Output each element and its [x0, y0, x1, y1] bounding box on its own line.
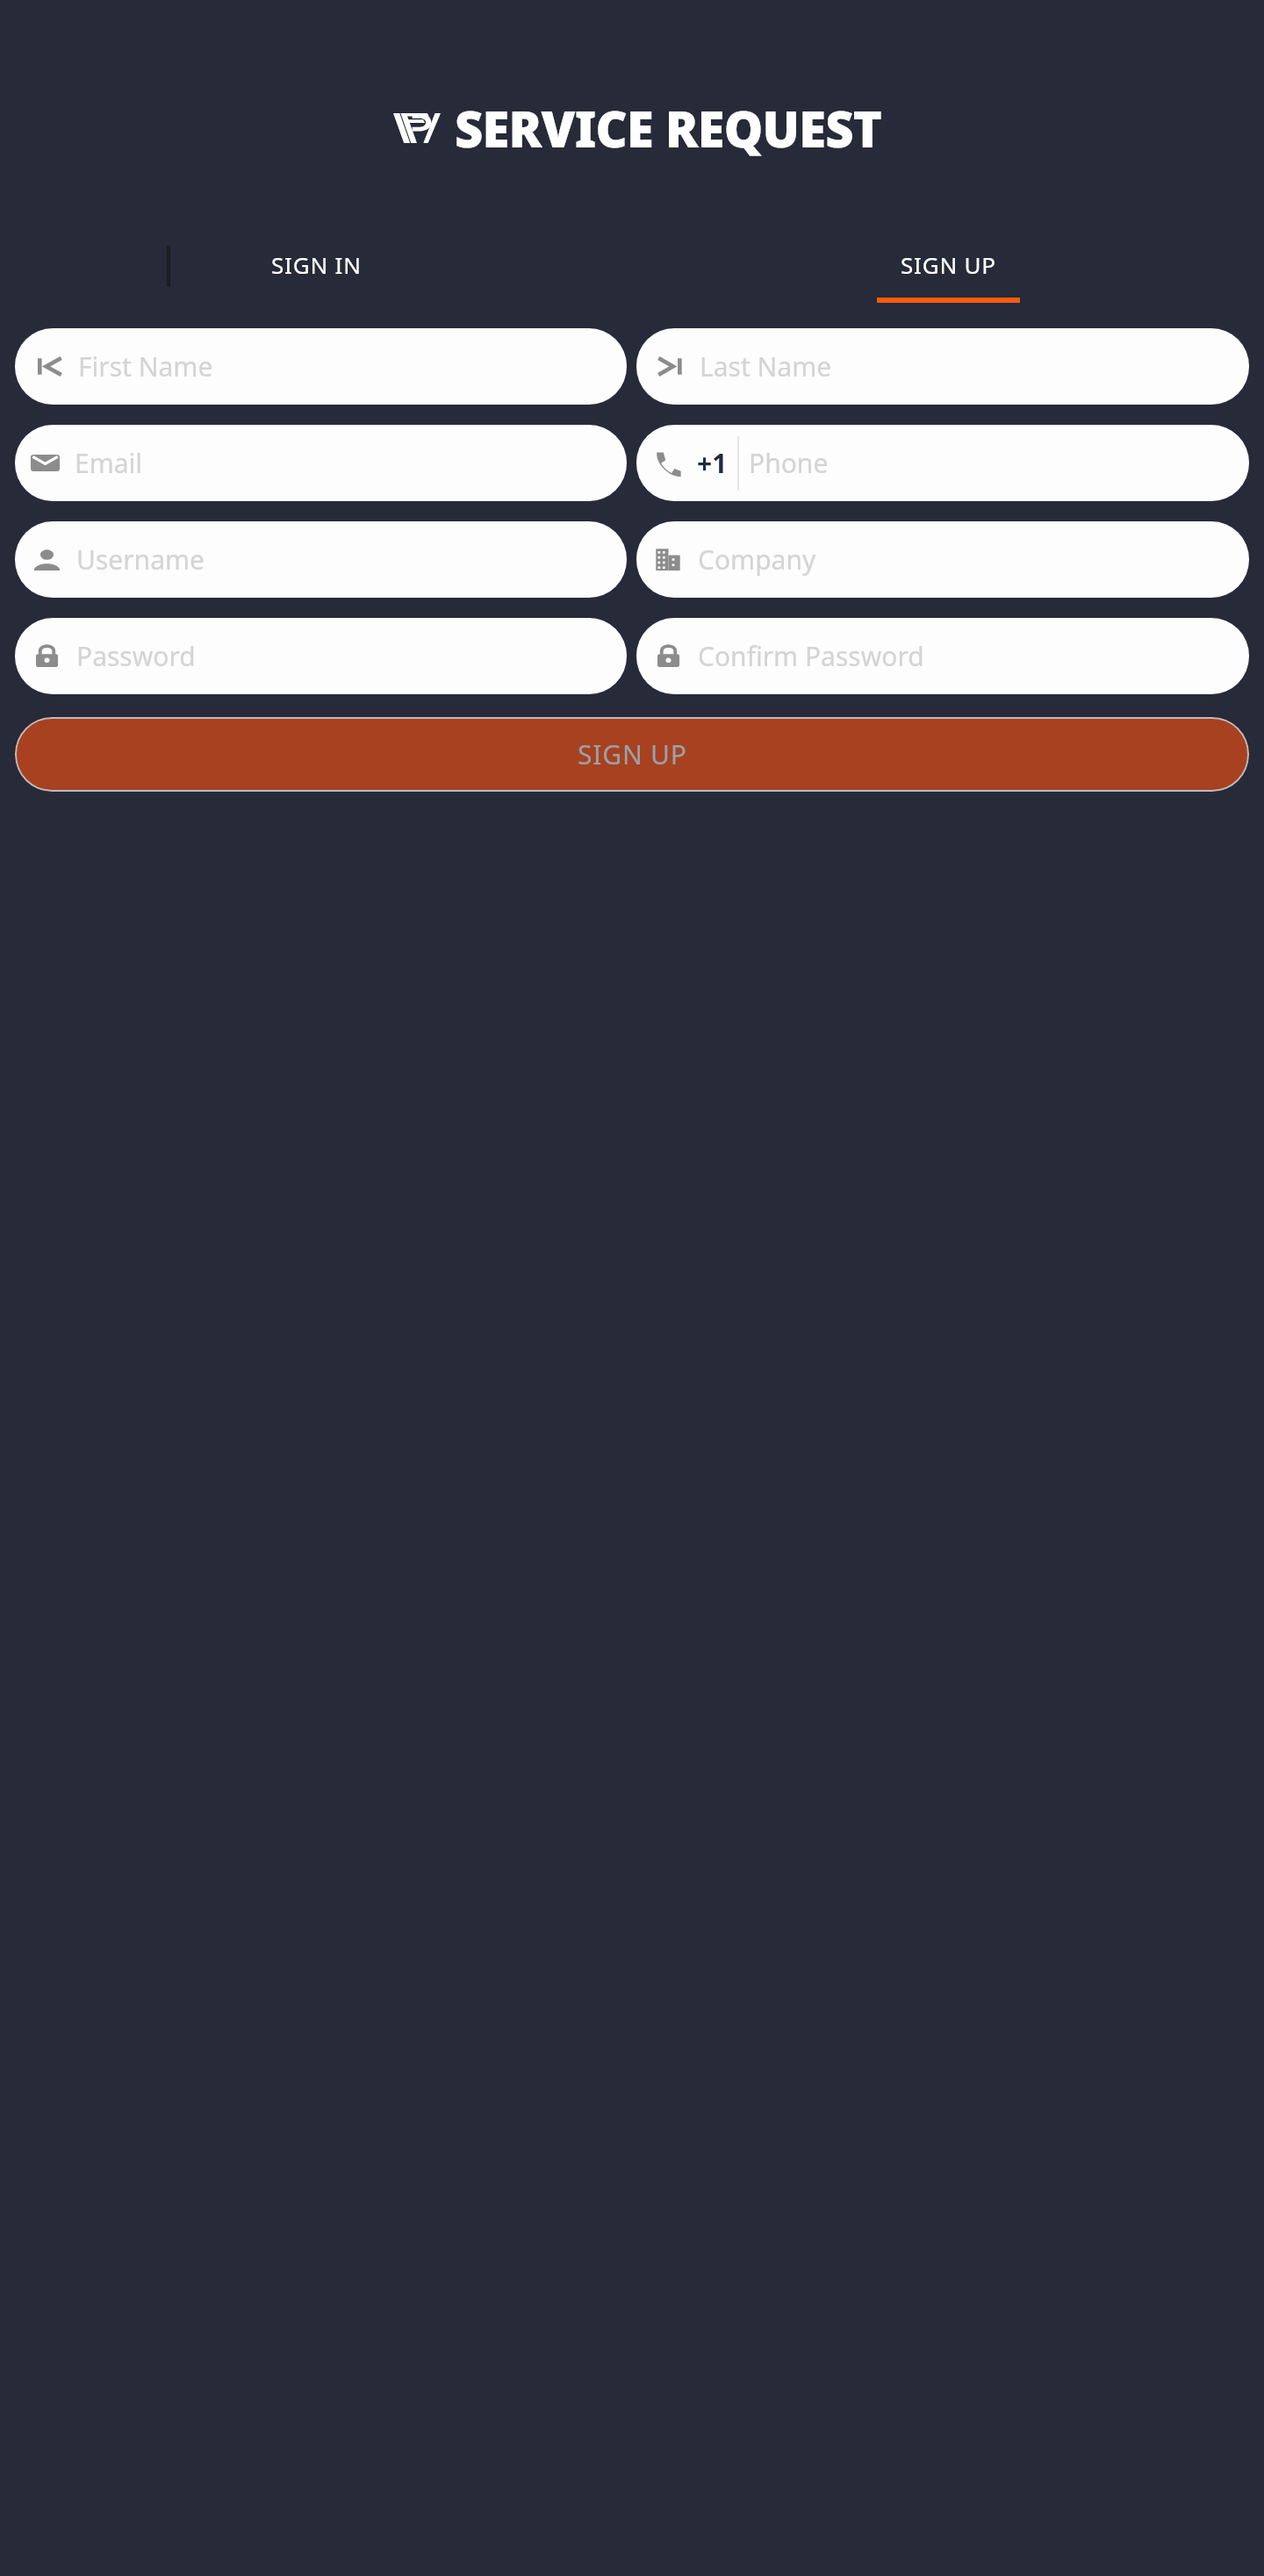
- staticText: SIGN UP: [578, 736, 687, 772]
- button[interactable]: Password: [15, 618, 627, 694]
- button[interactable]: First Name: [15, 328, 627, 405]
- staticText: Username: [76, 542, 205, 578]
- staticText: SERVICE REQUEST: [455, 95, 881, 161]
- button[interactable]: SIGN UP: [632, 240, 1264, 304]
- staticText: Email: [75, 445, 143, 481]
- button[interactable]: Username: [15, 521, 627, 598]
- staticText: SIGN IN: [271, 249, 362, 280]
- staticText: Last Name: [700, 348, 832, 384]
- button[interactable]: SIGN IN: [0, 240, 632, 304]
- staticText: +1: [697, 445, 728, 481]
- staticText: Phone: [749, 445, 829, 481]
- button[interactable]: Company: [636, 521, 1249, 598]
- staticText: Confirm Password: [698, 638, 924, 674]
- staticText: SIGN UP: [901, 249, 996, 280]
- staticText: First Name: [78, 348, 213, 384]
- staticText: Company: [698, 542, 816, 578]
- button[interactable]: Email: [15, 425, 627, 501]
- staticText: Password: [76, 638, 196, 674]
- button[interactable]: Last Name: [636, 328, 1249, 405]
- button[interactable]: SIGN UP: [15, 717, 1249, 792]
- button[interactable]: +1: [636, 425, 1249, 501]
- other: Logo: [393, 113, 441, 143]
- button[interactable]: Confirm Password: [636, 618, 1249, 694]
